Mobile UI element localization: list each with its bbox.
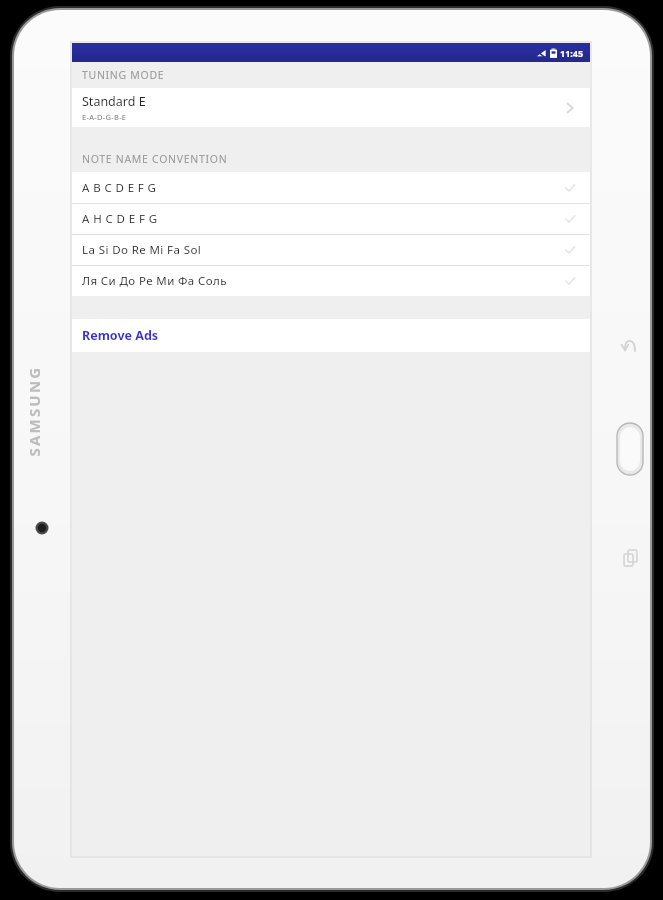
- staticText: La Si Do Re Mi Fa Sol: [82, 242, 202, 258]
- staticText: Standard E: [82, 93, 146, 110]
- staticText: A H C D E F G: [82, 211, 158, 227]
- button[interactable]: Remove Ads: [72, 319, 590, 352]
- staticText: Remove Ads: [82, 327, 159, 344]
- staticText: Ля Си До Ре Ми Фа Соль: [82, 273, 227, 289]
- staticText: NOTE NAME CONVENTION: [82, 152, 228, 166]
- staticText: E-A-D-G-B-E: [82, 112, 127, 122]
- button[interactable]: Standard E: [72, 88, 590, 127]
- button[interactable]: A H C D E F G: [72, 204, 590, 234]
- other: Open tuning mode: [562, 100, 578, 116]
- staticText: A B C D E F G: [82, 180, 157, 196]
- button[interactable]: Ля Си До Ре Ми Фа Соль: [72, 266, 590, 296]
- button[interactable]: A B C D E F G: [72, 172, 590, 203]
- staticText: 11:45: [560, 47, 584, 59]
- button[interactable]: La Si Do Re Mi Fa Sol: [72, 235, 590, 265]
- staticText: SAMSUNG: [23, 365, 43, 456]
- staticText: TUNING MODE: [82, 68, 165, 82]
